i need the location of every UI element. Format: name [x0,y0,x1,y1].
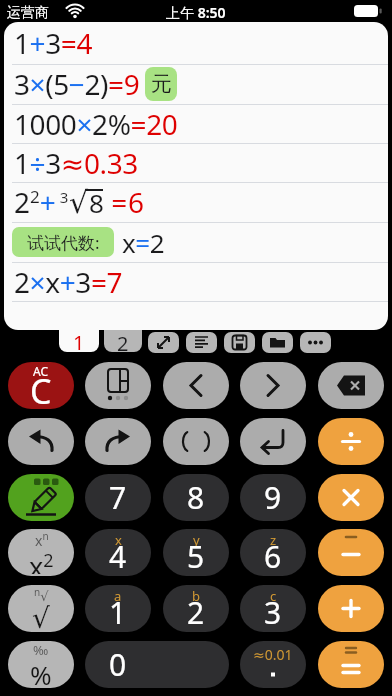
staticText: 3×(5−2)=9 [14,65,140,103]
button[interactable] [318,362,384,409]
button[interactable]: AC [8,362,74,409]
staticText: 7 [109,477,127,518]
staticText: ≈0.01 [253,645,293,664]
staticText: b [192,587,200,605]
staticText: 1 [109,592,127,632]
staticText: 2×x+3=7 [14,263,123,301]
staticText: 1000×2%=20 [14,105,178,143]
staticText: 1÷3≈0.33 [14,144,138,182]
staticText: n√ [34,585,49,604]
button[interactable]: 8 [163,474,229,521]
button[interactable] [163,362,229,409]
button[interactable]: 2 [104,330,142,352]
staticText: x2 [29,548,54,574]
staticText: a [114,587,122,605]
button[interactable] [186,332,217,353]
button[interactable] [240,418,306,465]
button[interactable] [318,529,384,576]
button[interactable]: y [163,529,229,576]
staticText: z [270,531,277,549]
button[interactable]: 元 [145,67,177,101]
button[interactable] [8,418,74,465]
button[interactable]: 试试代数: [12,227,114,257]
staticText: 1+3=4 [14,24,93,62]
staticText: y [193,531,200,549]
staticText: = [104,183,128,221]
staticText: 4 [109,536,127,576]
button[interactable]: 9 [240,474,306,521]
staticText: 2 [117,330,129,352]
staticText: 6 [264,536,282,576]
button[interactable] [318,641,384,688]
staticText: 2 [187,592,205,632]
button[interactable] [240,362,306,409]
staticText: 3 [264,592,282,632]
button[interactable] [148,332,179,353]
staticText: √ [69,185,89,220]
button[interactable]: n√ [8,585,74,632]
button[interactable]: 1 [59,328,99,352]
staticText: 运营商 [7,4,49,22]
button[interactable]: b [163,585,229,632]
staticText: 8 [89,185,104,220]
button[interactable] [318,418,384,465]
staticText: 6 [128,183,145,221]
button[interactable]: c [240,585,306,632]
staticText: √ [32,602,50,630]
staticText: 上午 8:50 [166,3,226,22]
staticText: 元 [151,71,172,97]
staticText: xn [35,529,49,550]
button[interactable] [163,418,229,465]
button[interactable]: z [240,529,306,576]
staticText: c [270,587,277,605]
button[interactable] [85,418,151,465]
staticText: ‰ [33,641,49,659]
button[interactable]: 7 [85,474,151,521]
button[interactable]: ‰ [8,641,74,688]
staticText: x [115,531,122,549]
button[interactable] [300,332,331,353]
staticText: x=2 [122,225,165,260]
staticText: C [30,368,52,409]
button[interactable]: x [85,529,151,576]
staticText: 1 [73,329,85,352]
staticText: 22+ 3 [14,183,69,221]
staticText: 5 [187,536,205,576]
button[interactable] [8,474,74,521]
button[interactable] [262,332,293,353]
button[interactable]: xn [8,529,74,576]
button[interactable] [224,332,255,353]
button[interactable] [318,585,384,632]
button[interactable]: ≈0.01 [240,641,306,688]
staticText: AC [33,363,49,379]
button[interactable]: a [85,585,151,632]
button[interactable] [318,474,384,521]
staticText: 8 [187,477,205,518]
button[interactable]: 0 [85,641,229,688]
staticText: 9 [264,477,282,518]
staticText: 试试代数: [27,231,100,254]
staticText: 0 [109,644,127,685]
staticText: % [30,657,52,686]
button[interactable] [85,362,151,409]
